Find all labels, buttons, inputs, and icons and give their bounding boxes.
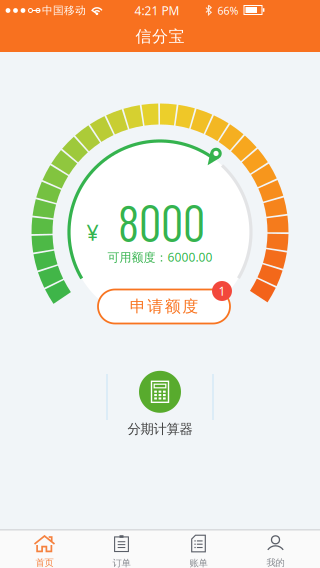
- button[interactable]: 首页: [6, 529, 83, 568]
- staticText: 分期计算器: [127, 421, 192, 437]
- button[interactable]: 订单: [83, 529, 160, 568]
- staticText: 8000: [118, 192, 205, 252]
- button[interactable]: 我的: [237, 529, 314, 568]
- staticText: 中国移动: [42, 4, 86, 17]
- button[interactable]: 账单: [160, 529, 237, 568]
- button[interactable]: 分期计算器: [115, 371, 205, 437]
- staticText: 4:21 PM: [134, 2, 179, 18]
- staticText: 我的: [266, 557, 284, 568]
- staticText: 66%: [217, 3, 238, 18]
- staticText: 申请额度: [130, 297, 198, 316]
- staticText: ¥: [86, 218, 98, 247]
- staticText: 账单: [189, 557, 207, 568]
- staticText: 1: [218, 283, 225, 299]
- staticText: 信分宝: [135, 27, 184, 46]
- button[interactable]: 申请额度: [98, 289, 230, 323]
- staticText: 可用额度：6000.00: [107, 249, 212, 265]
- staticText: 订单: [112, 557, 130, 568]
- staticText: 首页: [35, 557, 53, 568]
